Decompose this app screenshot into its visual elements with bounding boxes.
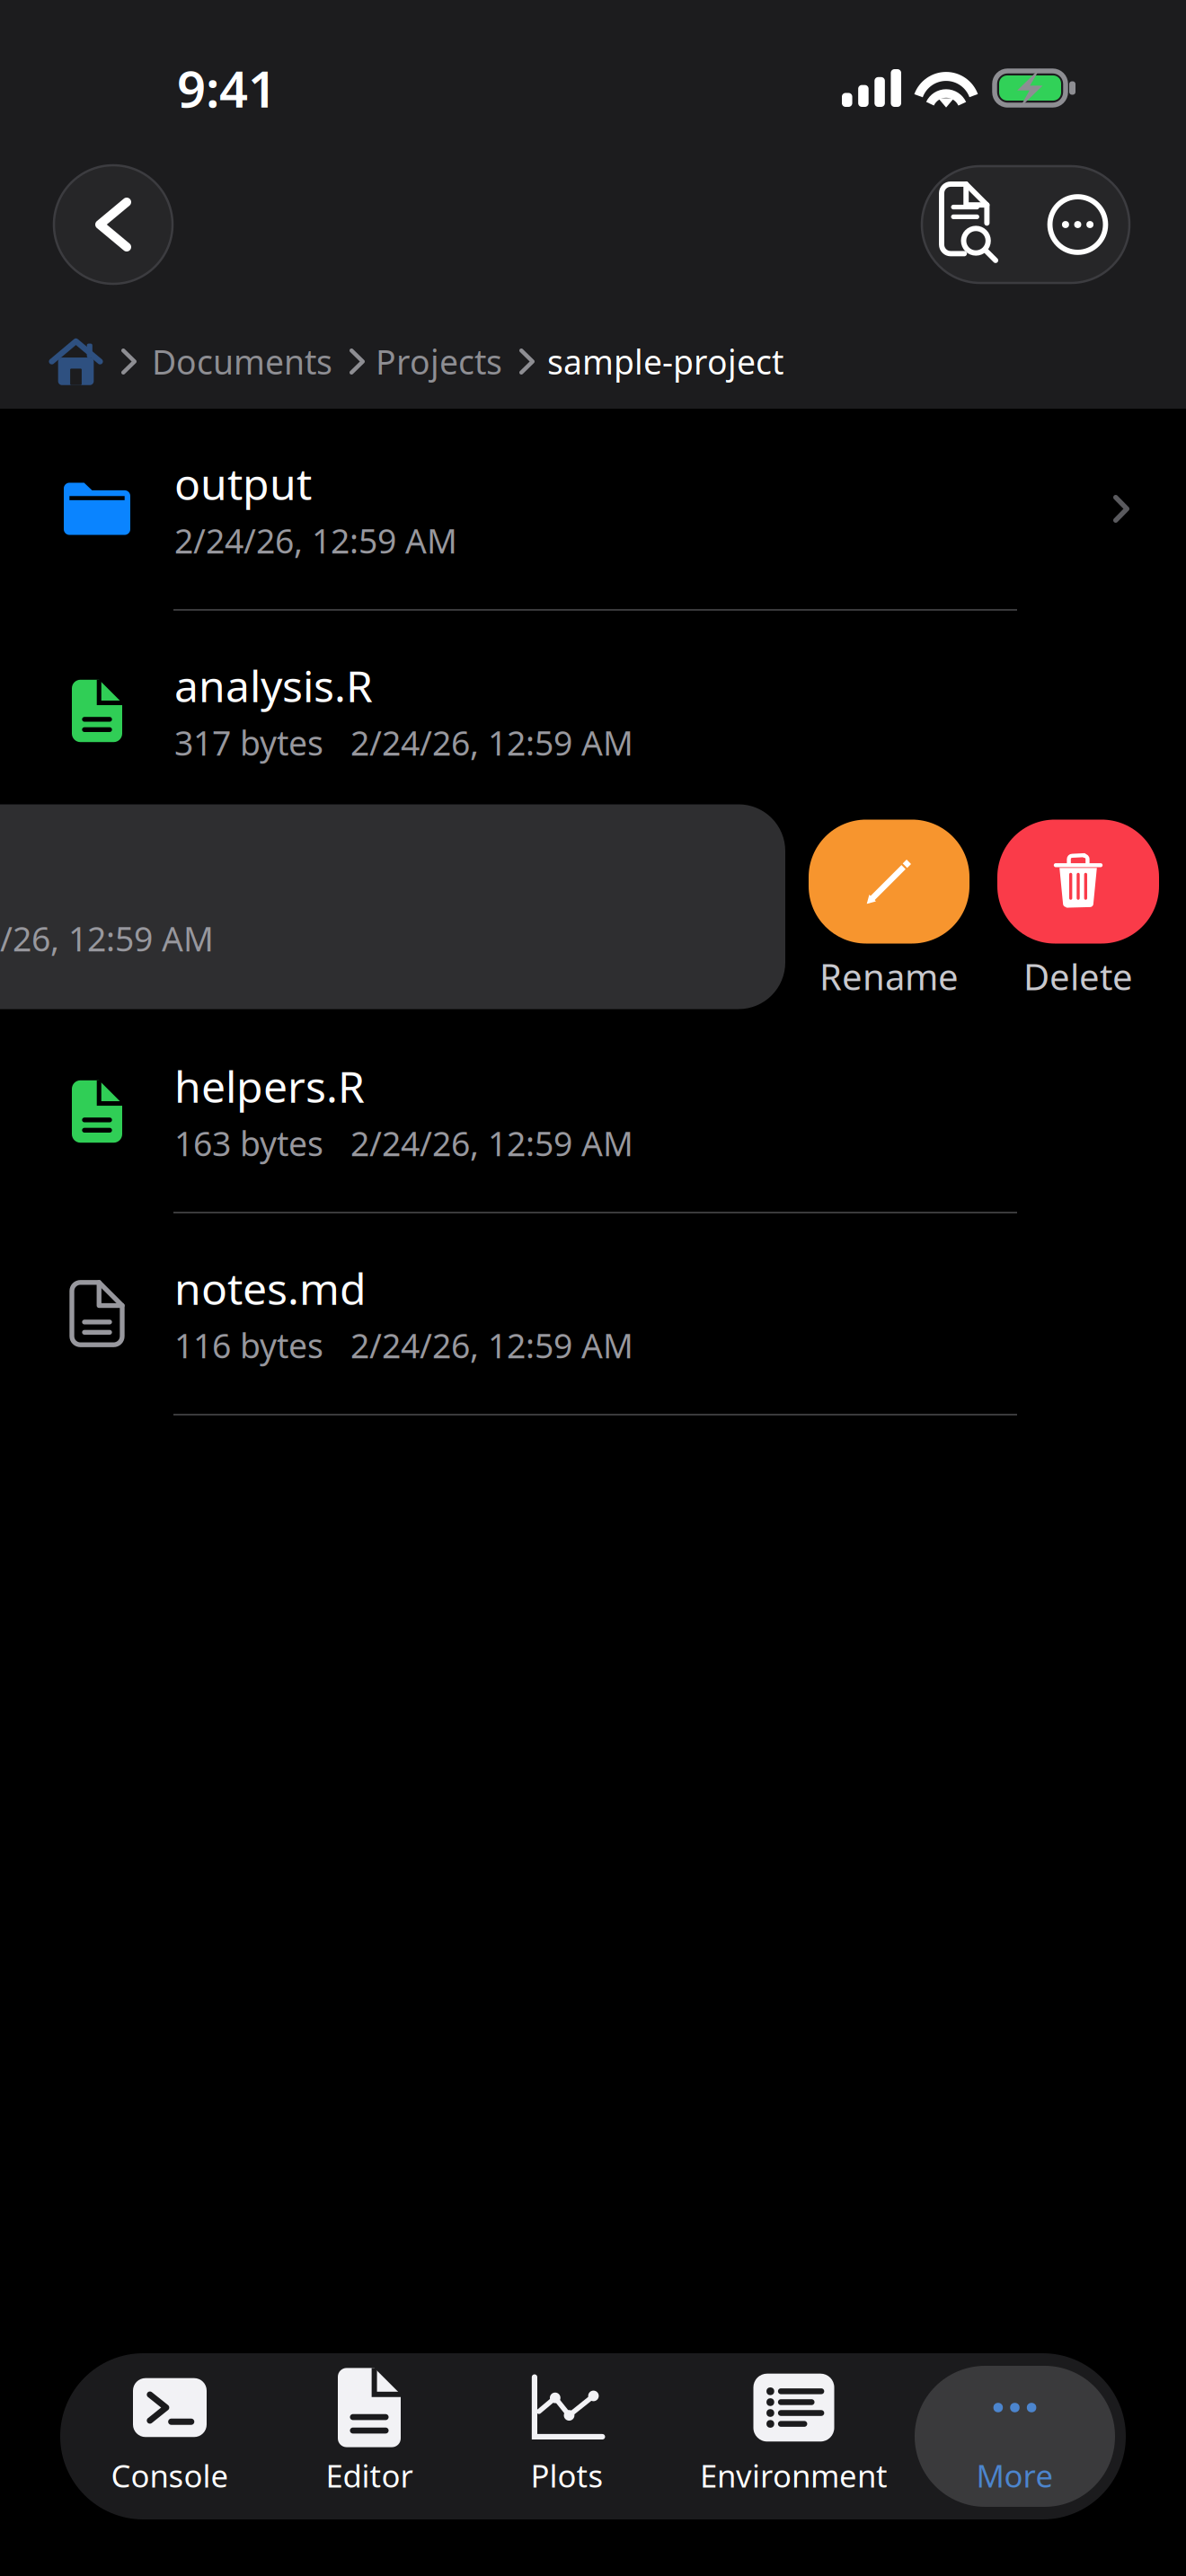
button[interactable]: Plots	[459, 2353, 675, 2519]
staticText: Editor	[326, 2455, 413, 2496]
button[interactable]: helpers.R	[0, 1011, 1186, 1212]
staticText: Documents	[152, 339, 332, 384]
staticText: 317 bytes 2/24/26, 12:59 AM	[0, 916, 214, 961]
button[interactable]: Home	[49, 338, 103, 385]
button[interactable]: Search in files	[922, 166, 1026, 283]
button[interactable]: Environment	[675, 2353, 913, 2519]
staticText: 116 bytes 2/24/26, 12:59 AM	[174, 1323, 633, 1368]
staticText: Plots	[531, 2455, 603, 2496]
staticText: Rename	[819, 953, 959, 1000]
button[interactable]: Documents	[152, 339, 332, 384]
staticText: Environment	[700, 2455, 888, 2496]
staticText: 2/24/26, 12:59 AM	[174, 518, 457, 563]
staticText: 163 bytes 2/24/26, 12:59 AM	[174, 1121, 633, 1166]
staticText: Console	[111, 2455, 229, 2496]
staticText: output	[174, 455, 312, 512]
staticText: notes.md	[174, 1260, 367, 1317]
button[interactable]: analysis.R	[0, 611, 1186, 811]
staticText: More	[976, 2455, 1053, 2496]
button[interactable]: More actions	[1026, 166, 1129, 283]
button[interactable]: Projects	[376, 339, 502, 384]
button[interactable]: Console	[60, 2353, 279, 2519]
button[interactable]: Delete	[997, 820, 1159, 1000]
button[interactable]: Rename	[809, 820, 969, 1000]
staticText: 9:41	[177, 55, 277, 121]
staticText: Delete	[1023, 953, 1133, 1000]
button[interactable]: More	[913, 2353, 1117, 2519]
staticText: analysis.R	[174, 657, 373, 714]
button[interactable]: Back	[54, 165, 173, 284]
staticText: Projects	[376, 339, 502, 384]
staticText: 317 bytes 2/24/26, 12:59 AM	[174, 720, 633, 765]
button[interactable]: output	[0, 409, 1186, 609]
button[interactable]: notes.md	[0, 1213, 1186, 1414]
button[interactable]: Editor	[279, 2353, 459, 2519]
staticText: helpers.R	[174, 1057, 365, 1115]
staticText: sample-project	[547, 339, 783, 384]
